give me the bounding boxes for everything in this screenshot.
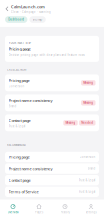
- staticText: Pricing page: [8, 154, 29, 160]
- button[interactable]: Settings: [78, 199, 104, 220]
- staticText: Trust & Legal: [78, 178, 95, 182]
- staticText: History: [60, 210, 69, 214]
- staticText: Brand: [8, 104, 16, 108]
- staticText: Missing: [83, 101, 93, 105]
- staticText: Conversion: [8, 84, 24, 88]
- button[interactable]: Overview: [0, 199, 26, 220]
- staticText: YOUR NEXT STEP: [8, 41, 31, 45]
- button[interactable]: Back: [5, 6, 9, 11]
- staticText: Project name consistency: [8, 166, 52, 171]
- button[interactable]: Project name consistency: [5, 163, 99, 174]
- staticText: Decisive pricing page with clear plans a…: [8, 53, 84, 57]
- staticText: Trust & Legal: [8, 124, 25, 128]
- staticText: CRITICAL NOW: [7, 68, 27, 71]
- staticText: Trust & Legal: [78, 190, 95, 193]
- staticText: Dashboard: [8, 18, 24, 21]
- staticText: Missing: [83, 81, 93, 85]
- button[interactable]: Dashboard: [5, 16, 27, 23]
- button[interactable]: Terms of Service: [5, 187, 99, 197]
- staticText: Missing: [65, 121, 75, 125]
- staticText: Needed: [81, 121, 93, 125]
- staticText: Terms of Service: [8, 189, 38, 194]
- staticText: CalmLaunch.com: [11, 4, 45, 9]
- button[interactable]: Project name consistency: [5, 94, 99, 111]
- button[interactable]: Sitemap: [29, 16, 46, 23]
- staticText: Overview: [7, 210, 18, 214]
- button[interactable]: History: [52, 199, 78, 220]
- button[interactable]: Contact page: [5, 175, 99, 185]
- staticText: Clean · Calm page · scanning: [11, 10, 51, 14]
- staticText: Brand: [87, 167, 95, 170]
- staticText: Pricing page: [8, 78, 29, 83]
- staticText: Contact page: [8, 177, 30, 183]
- staticText: Settings: [85, 210, 96, 214]
- staticText: Pricing page: [8, 46, 30, 51]
- staticText: Conversion: [79, 155, 95, 159]
- button[interactable]: Contact page: [5, 114, 99, 131]
- staticText: Pages: [35, 210, 43, 214]
- staticText: Contact page: [8, 118, 30, 123]
- button[interactable]: Pages: [26, 199, 52, 220]
- button[interactable]: Pricing page: [5, 152, 99, 162]
- staticText: RECOMMENDED: [7, 143, 26, 147]
- staticText: Sitemap: [33, 18, 43, 21]
- staticText: Project name consistency: [8, 98, 52, 103]
- button[interactable]: Pricing page: [5, 74, 99, 91]
